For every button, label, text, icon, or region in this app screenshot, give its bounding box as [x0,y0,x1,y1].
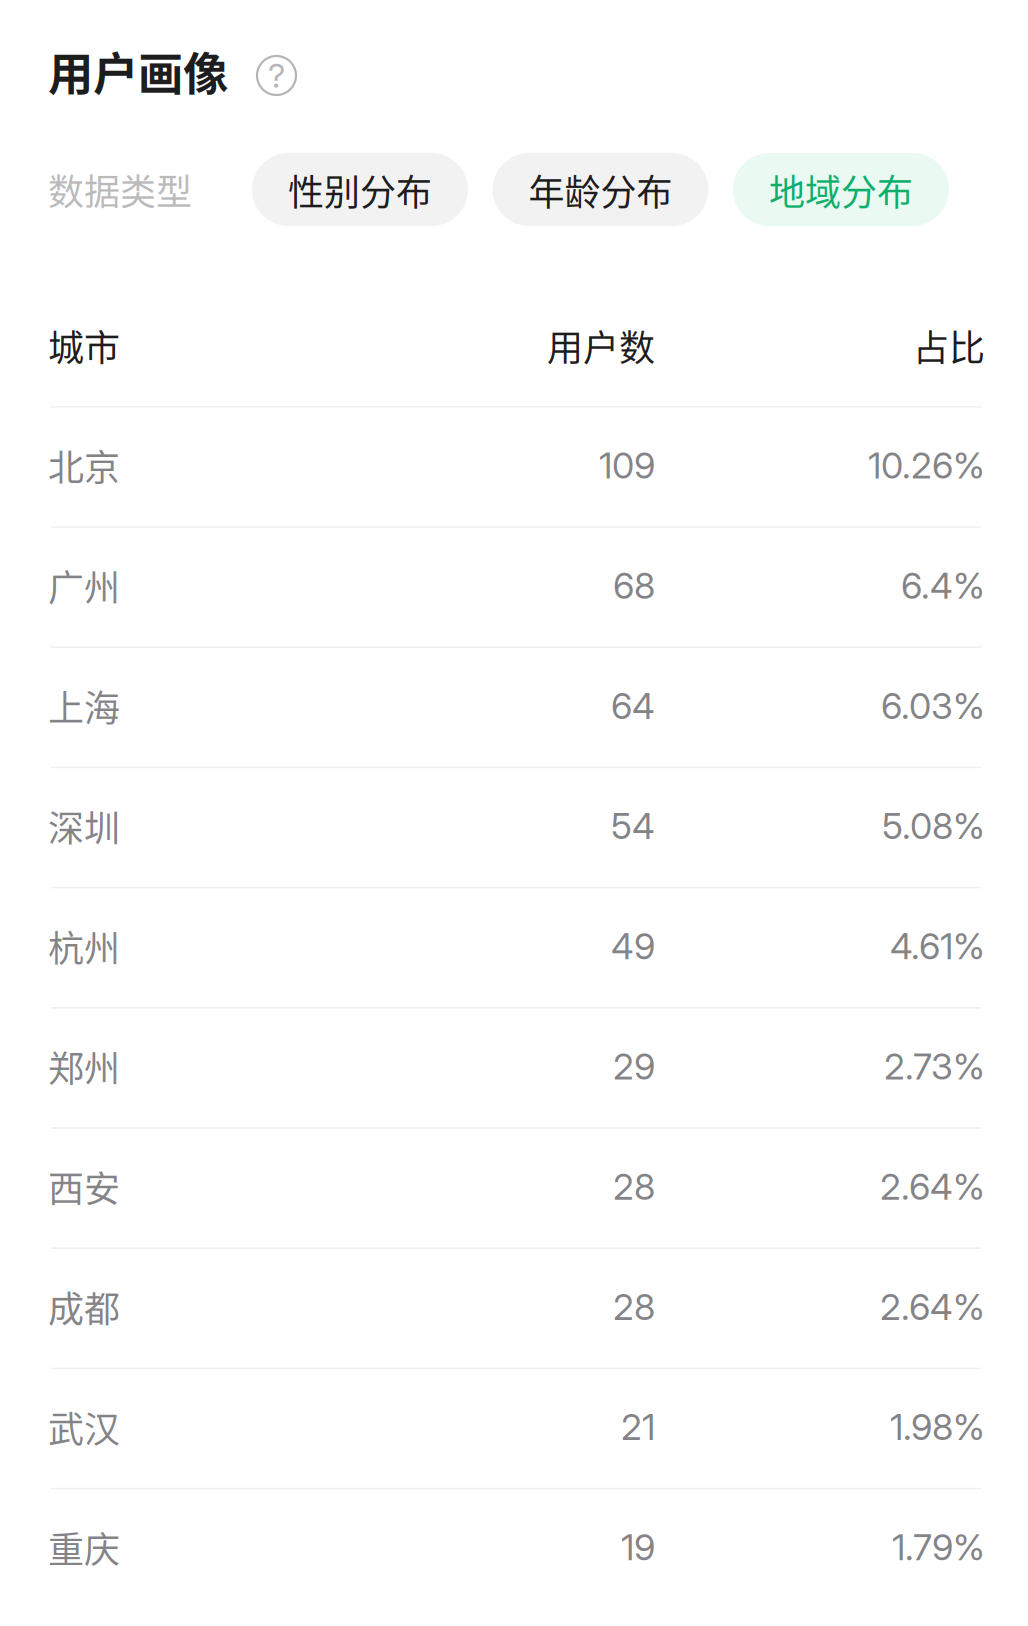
staticText: 1.79% [892,1525,985,1569]
staticText: 5.08% [882,804,985,848]
staticText: 1.98% [890,1405,985,1449]
button[interactable]: 武汉 [0,1369,1028,1488]
staticText: 占比 [913,319,985,371]
button[interactable]: 西安 [0,1129,1028,1247]
staticText: 6.4% [901,564,985,607]
staticText: 29 [613,1045,655,1088]
staticText: 地域分布 [769,164,913,216]
staticText: 西安 [48,1160,120,1213]
staticText: 年龄分布 [528,164,672,216]
button[interactable]: 北京 [0,408,1028,526]
staticText: 2.64% [880,1285,985,1329]
staticText: 重庆 [48,1521,120,1573]
staticText: 19 [621,1525,655,1569]
staticText: ? [268,55,285,96]
staticText: 28 [613,1165,655,1208]
staticText: 2.73% [884,1045,985,1088]
staticText: 49 [611,924,655,968]
button[interactable]: 性别分布 [252,153,468,226]
staticText: 2.64% [880,1165,985,1208]
button[interactable]: 成都 [0,1249,1028,1368]
staticText: 10.26% [868,444,985,487]
button[interactable]: 郑州 [0,1009,1028,1127]
staticText: 深圳 [48,800,120,852]
staticText: 武汉 [48,1401,120,1453]
staticText: 68 [613,564,655,607]
button[interactable]: Help [257,56,296,95]
staticText: 4.61% [890,924,985,968]
button[interactable]: 上海 [0,648,1028,767]
staticText: 性别分布 [288,164,432,216]
staticText: 64 [611,684,655,728]
staticText: 数据类型 [48,163,192,215]
staticText: 用户画像 [48,38,228,104]
staticText: 上海 [48,680,120,732]
staticText: 广州 [48,559,120,612]
staticText: 杭州 [48,920,120,972]
staticText: 郑州 [48,1040,120,1092]
button[interactable]: 深圳 [0,768,1028,887]
staticText: 成都 [48,1281,120,1333]
staticText: 城市 [48,319,120,371]
button[interactable]: 重庆 [0,1489,1028,1608]
button[interactable]: 广州 [0,528,1028,646]
button[interactable]: 杭州 [0,888,1028,1007]
staticText: 6.03% [881,684,985,728]
staticText: 54 [611,804,655,848]
staticText: 北京 [48,439,120,491]
staticText: 用户数 [547,319,655,371]
staticText: 21 [621,1405,655,1449]
staticText: 109 [599,444,655,487]
button[interactable]: 地域分布 [733,153,949,226]
button[interactable]: 年龄分布 [492,153,708,226]
staticText: 28 [613,1285,655,1329]
